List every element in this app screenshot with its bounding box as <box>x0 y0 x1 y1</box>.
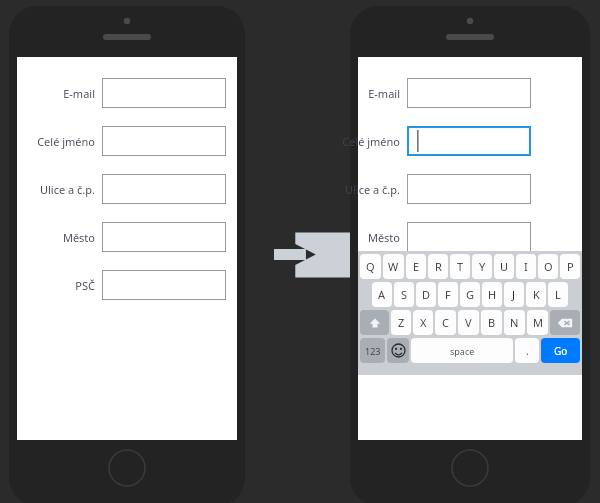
button[interactable]: I <box>516 254 536 279</box>
staticText: F <box>445 287 451 302</box>
button[interactable]: J <box>504 282 524 307</box>
button[interactable]: 123 <box>360 338 385 363</box>
button[interactable]: Shift <box>360 310 389 335</box>
staticText: W <box>388 259 399 274</box>
button[interactable]: P <box>560 254 580 279</box>
button[interactable]: space <box>411 338 513 363</box>
button[interactable]: Y <box>472 254 492 279</box>
staticText: M <box>533 315 543 330</box>
button[interactable]: E <box>406 254 426 279</box>
button[interactable]: H <box>482 282 502 307</box>
staticText: 123 <box>365 345 381 357</box>
staticText: Město <box>367 230 400 245</box>
button[interactable]: Backspace <box>550 310 580 335</box>
staticText: E-mail <box>368 86 400 101</box>
staticText: Ulice a č.p. <box>344 182 400 197</box>
staticText: S <box>401 287 408 302</box>
button[interactable] <box>407 174 531 204</box>
button[interactable]: L <box>548 282 568 307</box>
button[interactable]: Go <box>541 338 580 363</box>
button[interactable]: Q <box>360 254 381 279</box>
button[interactable]: D <box>416 282 436 307</box>
staticText: K <box>533 287 540 302</box>
button[interactable]: G <box>460 282 480 307</box>
button[interactable]: U <box>494 254 514 279</box>
staticText: E <box>413 259 420 274</box>
staticText: N <box>510 315 519 330</box>
staticText: Q <box>366 259 375 274</box>
staticText: Ulice a č.p. <box>39 182 95 197</box>
button[interactable]: N <box>504 310 525 335</box>
button[interactable] <box>102 270 226 300</box>
staticText: E-mail <box>63 86 95 101</box>
button[interactable]: V <box>458 310 479 335</box>
button[interactable]: M <box>527 310 548 335</box>
button[interactable] <box>102 126 226 156</box>
staticText: Go <box>554 344 568 358</box>
staticText: PSČ <box>75 278 95 293</box>
button[interactable]: S <box>394 282 414 307</box>
button[interactable]: W <box>383 254 404 279</box>
staticText: Celé jméno <box>37 134 95 149</box>
button[interactable] <box>407 126 531 156</box>
staticText: X <box>420 315 427 330</box>
button[interactable]: Emoji <box>387 338 409 363</box>
staticText: U <box>500 259 509 274</box>
staticText: P <box>567 259 574 274</box>
button[interactable]: B <box>481 310 502 335</box>
staticText: G <box>466 287 475 302</box>
staticText: T <box>457 259 464 274</box>
staticText: Z <box>398 315 405 330</box>
staticText: L <box>555 287 561 302</box>
staticText: A <box>378 287 386 302</box>
staticText: B <box>488 315 496 330</box>
button[interactable]: A <box>372 282 392 307</box>
button[interactable]: C <box>435 310 456 335</box>
button[interactable] <box>102 174 226 204</box>
staticText: Město <box>62 230 95 245</box>
staticText: J <box>512 287 516 302</box>
staticText: Celé jméno <box>342 134 400 149</box>
staticText: H <box>488 287 497 302</box>
staticText: I <box>524 259 528 274</box>
staticText: D <box>422 287 431 302</box>
staticText: . <box>526 344 529 358</box>
button[interactable]: Transition arrow <box>274 230 350 280</box>
staticText: V <box>465 315 472 330</box>
button[interactable] <box>407 78 531 108</box>
staticText: C <box>442 315 449 330</box>
staticText: R <box>435 259 442 274</box>
button[interactable] <box>407 222 531 252</box>
staticText: O <box>544 259 553 274</box>
button[interactable] <box>102 78 226 108</box>
button[interactable] <box>102 222 226 252</box>
button[interactable]: T <box>450 254 470 279</box>
button[interactable]: O <box>538 254 558 279</box>
button[interactable]: K <box>526 282 546 307</box>
staticText: Y <box>479 259 486 274</box>
button[interactable]: Z <box>391 310 411 335</box>
button[interactable]: F <box>438 282 458 307</box>
button[interactable]: X <box>413 310 433 335</box>
button[interactable]: . <box>515 338 539 363</box>
button[interactable]: R <box>428 254 448 279</box>
staticText: space <box>450 345 475 357</box>
